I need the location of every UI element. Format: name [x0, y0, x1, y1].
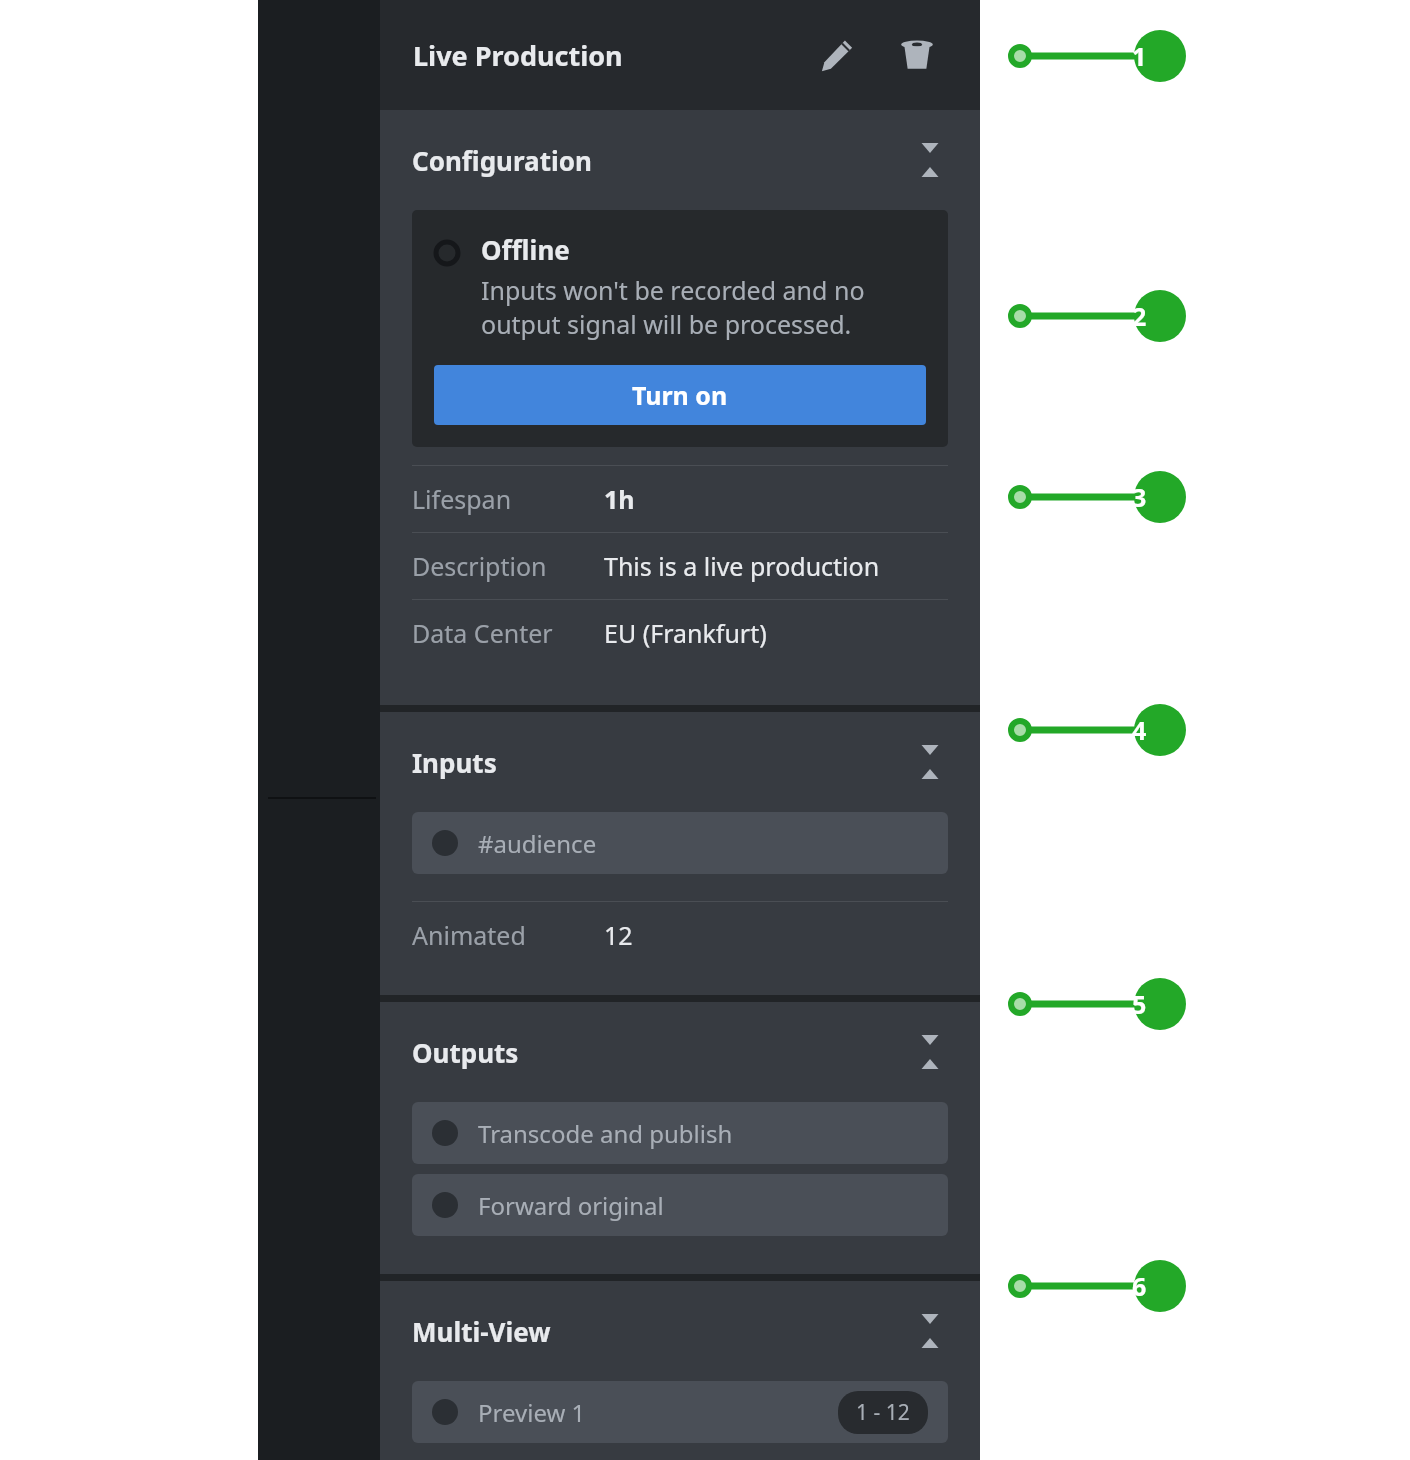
- staticText: Outputs: [412, 1035, 519, 1070]
- staticText: Offline: [481, 232, 570, 267]
- button[interactable]: Collapse section: [910, 742, 950, 782]
- staticText: Preview 1: [478, 1396, 838, 1429]
- button[interactable]: Collapse section: [910, 1032, 950, 1072]
- staticText: Configuration: [412, 143, 592, 178]
- button[interactable]: Collapse section: [910, 1311, 950, 1351]
- staticText: This is a live production: [604, 549, 880, 583]
- staticText: 5: [1132, 987, 1147, 1021]
- staticText: Turn on: [632, 378, 728, 412]
- staticText: Live Production: [413, 37, 623, 74]
- staticText: Forward original: [478, 1189, 948, 1222]
- staticText: Animated: [412, 918, 604, 952]
- button[interactable]: Collapse section: [910, 140, 950, 180]
- staticText: 2: [1132, 299, 1147, 333]
- staticText: Multi-View: [412, 1314, 551, 1349]
- staticText: Transcode and publish: [478, 1117, 948, 1150]
- button[interactable]: Transcode and publish: [412, 1102, 948, 1164]
- staticText: Inputs: [412, 745, 497, 780]
- button[interactable]: Lifespan: [412, 466, 948, 532]
- button[interactable]: #audience: [412, 812, 948, 874]
- button[interactable]: Forward original: [412, 1174, 948, 1236]
- staticText: 4: [1132, 713, 1147, 747]
- staticText: 1 - 12: [856, 1398, 910, 1427]
- staticText: 1h: [604, 482, 635, 516]
- staticText: Lifespan: [412, 482, 604, 516]
- button[interactable]: Turn on: [434, 365, 926, 425]
- button[interactable]: Animated: [412, 902, 948, 968]
- staticText: Inputs won't be recorded and no output s…: [481, 273, 865, 341]
- button[interactable]: Description: [412, 533, 948, 599]
- staticText: #audience: [478, 827, 948, 860]
- button[interactable]: Delete: [890, 28, 944, 82]
- staticText: EU (Frankfurt): [604, 616, 767, 650]
- staticText: Data Center: [412, 616, 604, 650]
- staticText: 12: [604, 918, 633, 952]
- button[interactable]: Preview 1: [412, 1381, 948, 1443]
- staticText: 6: [1132, 1269, 1147, 1303]
- staticText: Description: [412, 549, 604, 583]
- button[interactable]: Edit: [810, 28, 864, 82]
- button[interactable]: Data Center: [412, 600, 948, 666]
- staticText: 1: [1132, 39, 1147, 73]
- staticText: 3: [1132, 480, 1147, 514]
